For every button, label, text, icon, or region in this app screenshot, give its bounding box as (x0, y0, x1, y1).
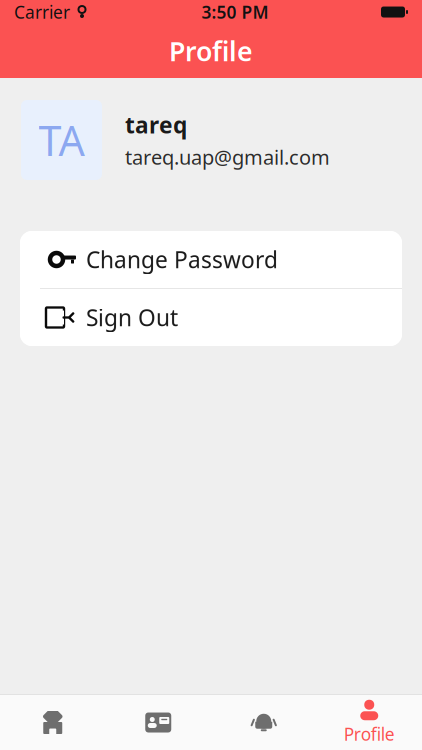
staticText: Sign Out (86, 302, 178, 332)
button[interactable]: Change Password (20, 231, 402, 288)
button[interactable]: Contacts (105, 695, 211, 750)
button[interactable]: Sign Out (20, 289, 402, 346)
button[interactable]: Notifications (211, 695, 316, 750)
staticText: Carrier (14, 0, 70, 23)
staticText: Profile (169, 33, 253, 69)
staticText: TA (38, 113, 84, 167)
staticText: tareq.uap@gmail.com (125, 144, 330, 170)
button[interactable]: Home (0, 695, 105, 750)
staticText: 3:50 PM (201, 0, 268, 23)
staticText: tareq (125, 110, 187, 140)
staticText: Change Password (86, 244, 278, 274)
button[interactable]: Profile (316, 695, 422, 750)
staticText: Profile (344, 722, 395, 745)
